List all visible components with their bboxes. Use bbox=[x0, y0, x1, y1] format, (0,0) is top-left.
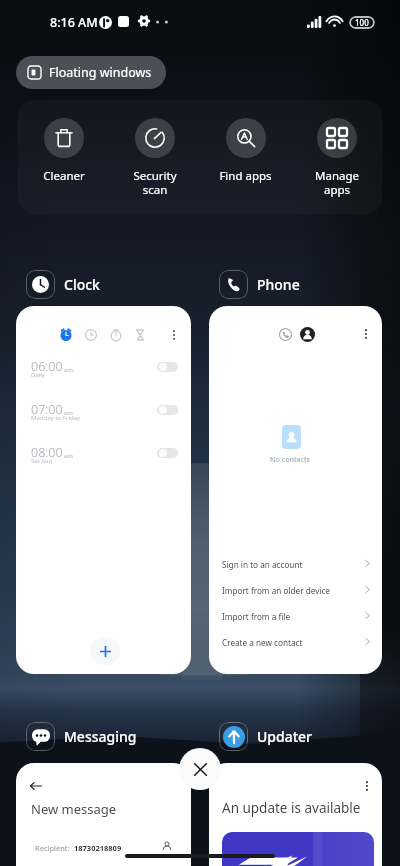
staticText: New message bbox=[31, 800, 117, 818]
staticText: Monday to Friday bbox=[31, 414, 81, 422]
button[interactable]: 06:00 bbox=[16, 306, 191, 674]
staticText: Floating windows bbox=[49, 64, 152, 81]
button[interactable]: Updater bbox=[219, 722, 313, 751]
staticText: Security scan bbox=[133, 168, 177, 197]
staticText: Manage apps bbox=[315, 168, 359, 197]
button[interactable]: No contacts bbox=[209, 306, 382, 674]
button[interactable]: An update is available bbox=[209, 763, 382, 866]
staticText: 100 bbox=[355, 17, 369, 28]
staticText: Daily bbox=[31, 371, 45, 379]
staticText: An update is available bbox=[222, 799, 361, 817]
button[interactable]: Add alarm bbox=[90, 637, 120, 665]
button[interactable]: Cleaner bbox=[18, 100, 109, 214]
staticText: Updater bbox=[257, 727, 313, 746]
staticText: Clock bbox=[64, 275, 100, 294]
staticText: No contacts bbox=[270, 454, 311, 464]
button[interactable]: Messaging bbox=[26, 722, 137, 751]
button[interactable]: Create a new contact bbox=[209, 631, 382, 657]
staticText: Recipient: bbox=[35, 843, 70, 853]
button[interactable]: Phone bbox=[219, 270, 300, 299]
button[interactable]: 07:00 bbox=[16, 399, 191, 441]
staticText: 06:00 bbox=[31, 358, 63, 375]
staticText: am bbox=[64, 409, 73, 417]
button[interactable]: Security scan bbox=[109, 100, 200, 214]
staticText: am bbox=[64, 366, 73, 374]
staticText: Import from a file bbox=[222, 611, 291, 622]
staticText: 07:00 bbox=[31, 401, 63, 418]
button[interactable]: Close all bbox=[179, 748, 221, 790]
staticText: 18730218809 bbox=[74, 843, 122, 853]
staticText: Sign in to an account bbox=[222, 559, 303, 570]
staticText: Create a new contact bbox=[222, 637, 303, 648]
button[interactable]: 08:00 bbox=[16, 442, 191, 484]
button[interactable]: Import from an older device bbox=[209, 579, 382, 605]
staticText: Messaging bbox=[64, 727, 137, 746]
button[interactable]: New message bbox=[16, 763, 191, 866]
button[interactable]: Sign in to an account bbox=[209, 553, 382, 579]
staticText: Phone bbox=[257, 275, 300, 294]
button[interactable]: Floating windows bbox=[16, 56, 166, 89]
staticText: Import from an older device bbox=[222, 585, 330, 596]
button[interactable]: Manage apps bbox=[291, 100, 382, 214]
button[interactable]: 06:00 bbox=[16, 356, 191, 398]
staticText: am bbox=[64, 452, 73, 460]
button[interactable]: Find apps bbox=[200, 100, 291, 214]
button[interactable]: Clock bbox=[26, 270, 100, 299]
staticText: 8:16 AM bbox=[50, 14, 98, 31]
staticText: Cleaner bbox=[43, 168, 85, 184]
staticText: Find apps bbox=[219, 168, 272, 184]
button[interactable]: Import from a file bbox=[209, 605, 382, 631]
staticText: 08:00 bbox=[31, 444, 63, 461]
staticText: Sat Sun bbox=[31, 457, 53, 465]
